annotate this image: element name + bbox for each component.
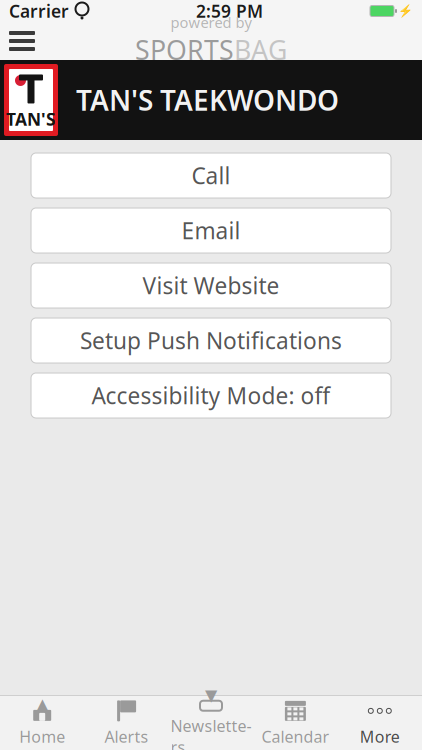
staticText: Accessibility Mode: off xyxy=(91,380,330,410)
staticText: SPORTS xyxy=(135,32,234,67)
staticText: powered by xyxy=(170,13,251,32)
staticText: ⚡ xyxy=(398,4,413,18)
button[interactable]: Alerts xyxy=(84,696,169,750)
button[interactable]: More xyxy=(338,696,422,750)
staticText: TAN'S xyxy=(6,107,56,130)
button[interactable]: Visit Website xyxy=(31,263,391,308)
staticText: Carrier xyxy=(9,0,69,22)
staticText: Email xyxy=(181,215,240,245)
staticText: ▲ xyxy=(35,694,50,717)
staticText: Newsletters xyxy=(170,715,251,750)
staticText: Calendar xyxy=(261,726,329,747)
staticText: Setup Push Notifications xyxy=(80,325,342,355)
staticText: BAG xyxy=(234,32,287,67)
staticText: Call xyxy=(191,160,230,190)
staticText: More xyxy=(360,726,400,747)
staticText: TAN'S TAEKWONDO xyxy=(76,81,339,119)
button[interactable]: ▲ xyxy=(0,696,84,750)
button[interactable]: Call xyxy=(31,153,391,198)
staticText: Visit Website xyxy=(142,270,279,300)
button[interactable]: Email xyxy=(31,208,391,253)
staticText: Home xyxy=(19,726,65,747)
button[interactable]: ▼ xyxy=(169,696,253,750)
staticText: ▼ xyxy=(205,686,217,704)
button[interactable]: Calendar xyxy=(253,696,338,750)
staticText: 2:59 PM xyxy=(196,0,263,22)
button[interactable]: Menu xyxy=(0,22,44,60)
button[interactable]: Setup Push Notifications xyxy=(31,318,391,363)
staticText: Alerts xyxy=(105,726,149,747)
button[interactable]: Accessibility Mode: off xyxy=(31,373,391,418)
